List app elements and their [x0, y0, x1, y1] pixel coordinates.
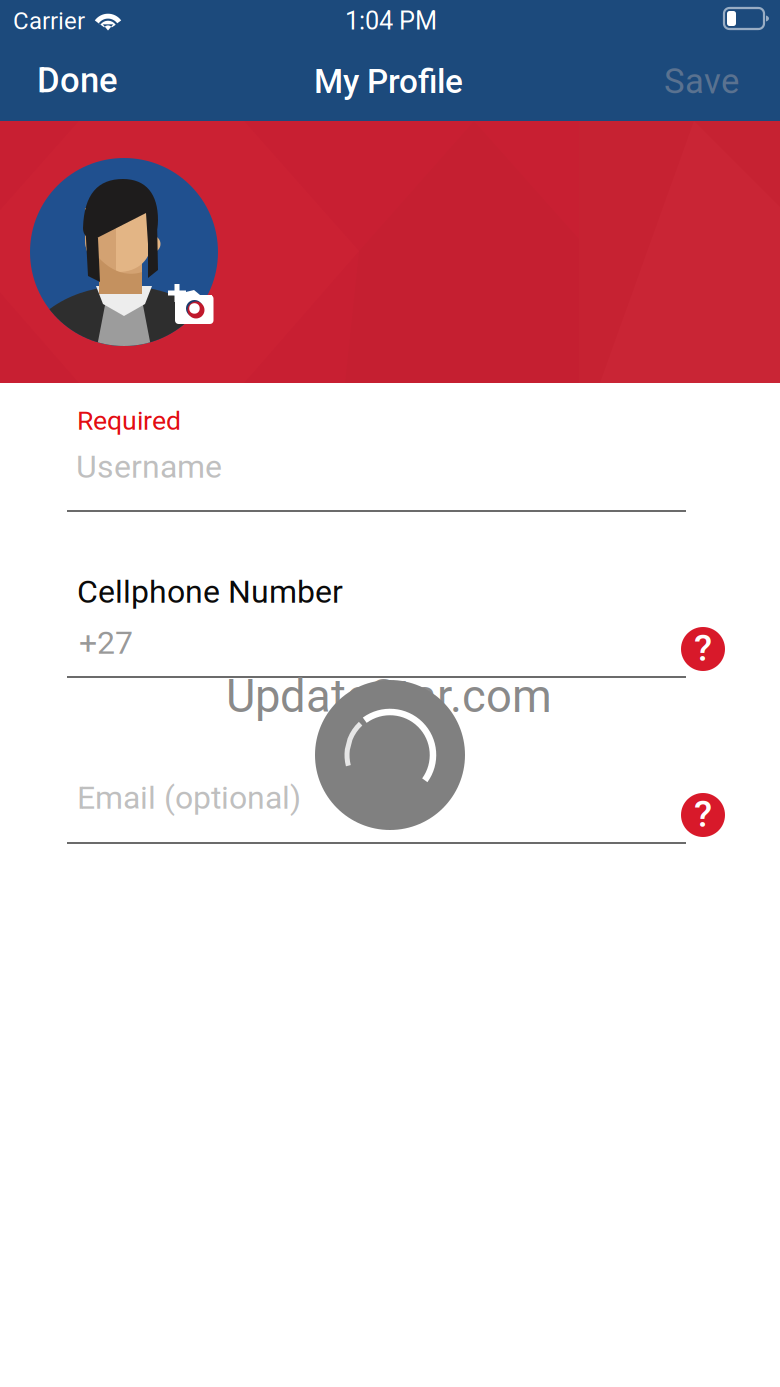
staticText: ? — [694, 792, 712, 836]
staticText: ? — [694, 626, 712, 670]
button[interactable]: Done — [23, 48, 132, 113]
staticText: UpdateStar.com — [226, 670, 552, 723]
button[interactable]: Change profile photo — [168, 284, 214, 325]
staticText: My Profile — [314, 62, 463, 101]
staticText: Done — [37, 60, 118, 101]
staticText: +27 — [79, 624, 133, 661]
button[interactable]: Help — [681, 793, 725, 837]
staticText: Carrier — [13, 7, 85, 35]
staticText: 1:04 PM — [345, 6, 437, 36]
staticText: Cellphone Number — [77, 573, 343, 610]
staticText: Email (optional) — [77, 779, 301, 816]
staticText: Username — [76, 448, 222, 485]
button[interactable]: Save — [650, 49, 753, 114]
staticText: Save — [664, 61, 739, 102]
button[interactable]: Help — [681, 627, 725, 671]
staticText: Required — [77, 405, 181, 436]
